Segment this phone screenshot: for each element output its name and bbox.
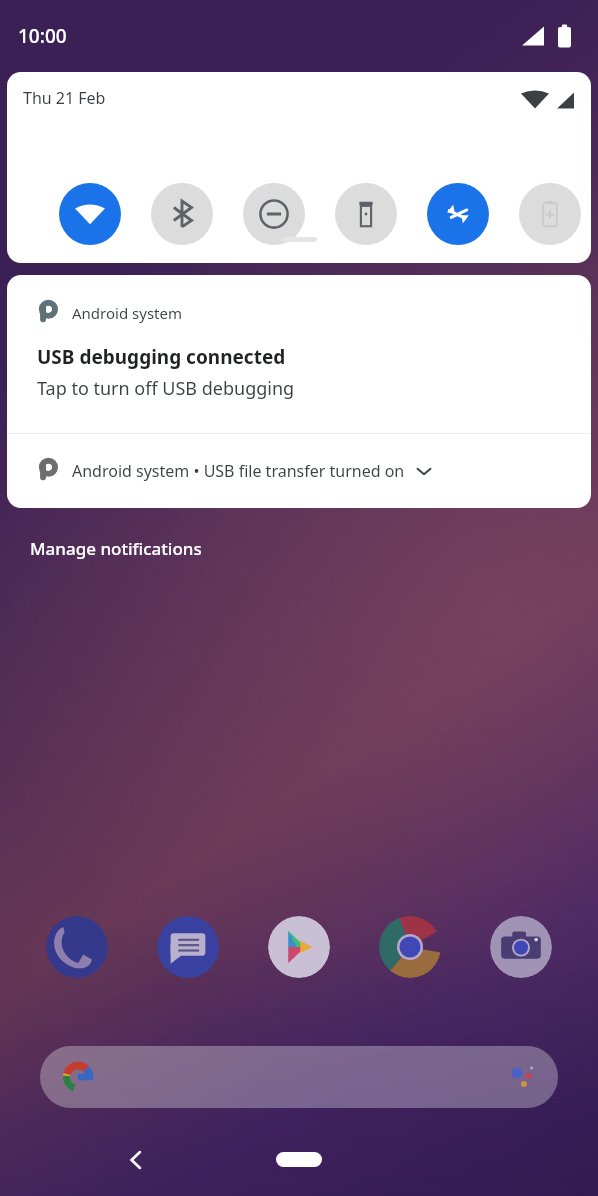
staticText: Android system	[72, 303, 182, 323]
button[interactable]: Camera	[490, 916, 552, 978]
staticText: Thu 21 Feb	[23, 87, 106, 109]
button[interactable]: Google search	[40, 1046, 558, 1108]
button[interactable]: Wi-Fi	[59, 183, 121, 245]
staticText: Manage notifications	[30, 537, 202, 560]
button[interactable]: Home	[276, 1152, 322, 1167]
staticText: Android system • USB file transfer turne…	[72, 460, 405, 482]
button[interactable]: Auto-rotate	[427, 183, 489, 245]
button[interactable]: Manage notifications	[16, 524, 216, 572]
staticText: USB debugging connected	[37, 344, 286, 370]
button[interactable]: Phone	[46, 916, 108, 978]
button[interactable]: Play Store	[268, 916, 330, 978]
button[interactable]: Flashlight	[335, 183, 397, 245]
button[interactable]: Android system • USB file transfer turne…	[7, 434, 591, 508]
staticText: Tap to turn off USB debugging	[37, 376, 295, 401]
button[interactable]: Android system	[7, 275, 591, 433]
button[interactable]: Battery Saver	[519, 183, 581, 245]
button[interactable]: Do not disturb	[243, 183, 305, 245]
button[interactable]: Chrome	[379, 916, 441, 978]
button[interactable]: Messages	[157, 916, 219, 978]
button[interactable]: Bluetooth	[151, 183, 213, 245]
button[interactable]: Back	[108, 1132, 164, 1188]
staticText: 10:00	[18, 23, 67, 49]
